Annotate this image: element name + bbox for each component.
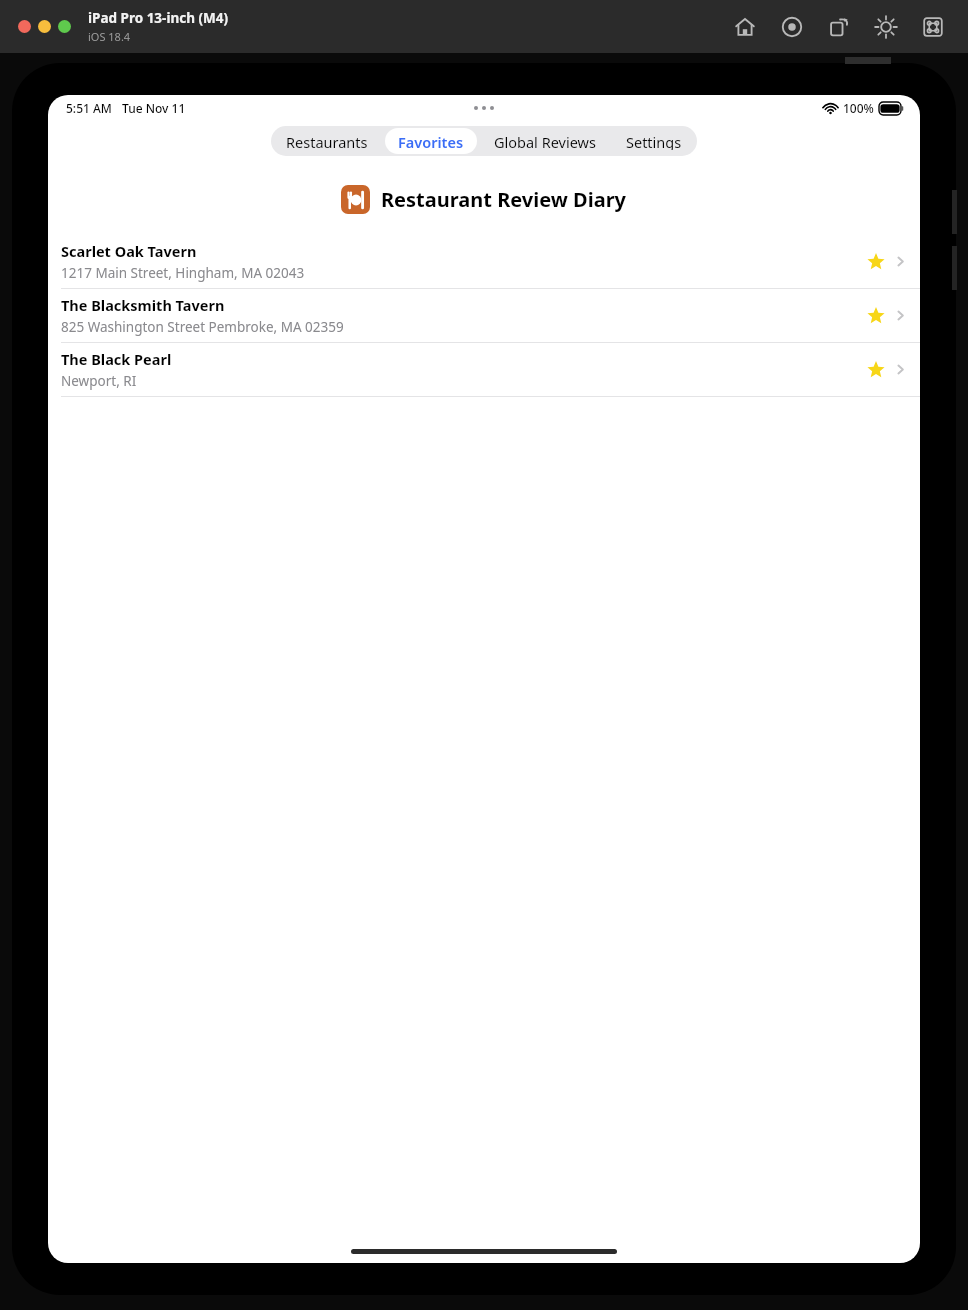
staticText: Restaurants: [286, 132, 368, 150]
button[interactable]: The Black Pearl: [48, 343, 920, 396]
staticText: Settings: [626, 132, 682, 150]
button[interactable]: Appearance: [873, 14, 899, 40]
staticText: 1217 Main Street, Hingham, MA 02043: [61, 264, 305, 282]
button[interactable]: Settings: [613, 128, 695, 154]
button[interactable]: Rotate: [826, 14, 852, 40]
button[interactable]: [58, 20, 71, 33]
staticText: Favorites: [398, 132, 464, 150]
staticText: Global Reviews: [494, 132, 596, 150]
button[interactable]: The Blacksmith Tavern: [48, 289, 920, 342]
staticText: iOS 18.4: [88, 29, 131, 44]
button[interactable]: Home: [732, 14, 758, 40]
staticText: Scarlet Oak Tavern: [61, 241, 197, 261]
button[interactable]: Favorites: [385, 128, 477, 154]
staticText: The Blacksmith Tavern: [61, 295, 225, 315]
staticText: 5:51 AM: [66, 100, 112, 116]
staticText: 825 Washington Street Pembroke, MA 02359: [61, 318, 344, 336]
button[interactable]: Keyboard shortcuts: [920, 14, 946, 40]
button[interactable]: Record: [779, 14, 805, 40]
staticText: The Black Pearl: [61, 349, 172, 369]
button[interactable]: Restaurants: [273, 128, 381, 154]
button[interactable]: Scarlet Oak Tavern: [48, 235, 920, 288]
staticText: 100%: [843, 100, 874, 116]
staticText: Tue Nov 11: [122, 100, 186, 116]
button[interactable]: [38, 20, 51, 33]
staticText: Newport, RI: [61, 372, 137, 390]
staticText: iPad Pro 13-inch (M4): [88, 9, 229, 27]
staticText: Restaurant Review Diary: [381, 186, 627, 213]
button[interactable]: [18, 20, 31, 33]
button[interactable]: Global Reviews: [481, 128, 609, 154]
